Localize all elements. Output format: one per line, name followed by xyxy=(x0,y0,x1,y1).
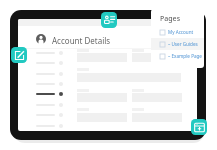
staticText: – Example Page xyxy=(168,53,202,59)
button[interactable] xyxy=(32,100,66,109)
button[interactable] xyxy=(32,49,66,58)
button[interactable]: – Example Page xyxy=(151,50,204,62)
staticText: Account Details xyxy=(52,35,111,46)
button[interactable] xyxy=(32,111,66,120)
button[interactable]: My Account xyxy=(151,26,204,38)
staticText: – User Guides xyxy=(168,41,198,47)
button[interactable]: Contacts xyxy=(101,12,117,28)
button[interactable]: Edit xyxy=(11,47,27,63)
button[interactable] xyxy=(32,69,66,78)
button[interactable]: New page xyxy=(191,119,207,135)
button[interactable]: – User Guides xyxy=(151,38,204,50)
button[interactable] xyxy=(32,121,66,130)
button[interactable] xyxy=(32,59,66,68)
staticText: Pages xyxy=(160,14,181,24)
button[interactable] xyxy=(32,80,66,89)
staticText: My Account xyxy=(168,29,194,35)
button[interactable] xyxy=(32,90,66,99)
